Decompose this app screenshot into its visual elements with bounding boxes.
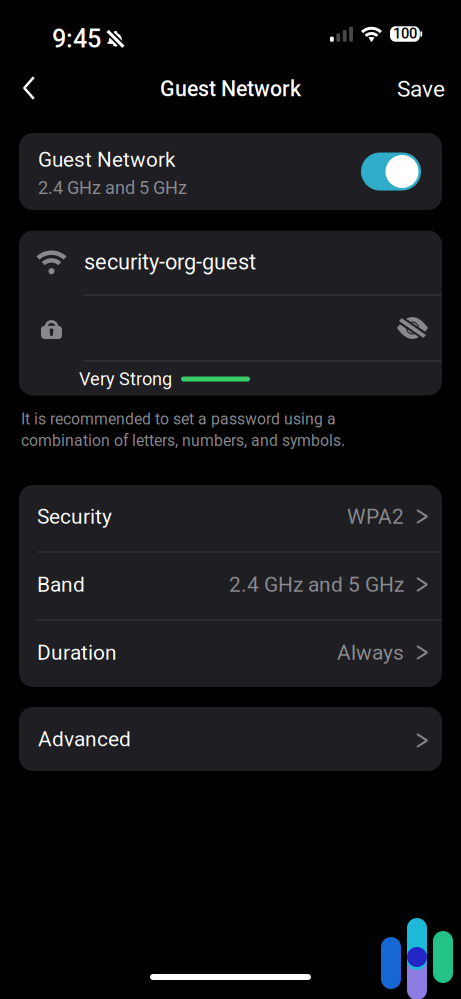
- button[interactable]: Guest Network: [19, 133, 442, 210]
- staticText: 100: [393, 25, 417, 42]
- staticText: combination of letters, numbers, and sym…: [21, 431, 345, 450]
- button[interactable]: Advanced: [19, 707, 442, 771]
- staticText: Guest Network: [160, 76, 301, 101]
- staticText: Band: [37, 572, 85, 597]
- staticText: It is recommended to set a password usin…: [21, 410, 336, 428]
- staticText: Advanced: [38, 727, 131, 751]
- button[interactable]: Band: [19, 552, 442, 619]
- staticText: WPA2: [347, 504, 404, 529]
- staticText: 2.4 GHz and 5 GHz: [38, 177, 187, 198]
- staticText: Very Strong: [79, 368, 172, 390]
- button[interactable]: Save: [381, 62, 461, 116]
- button[interactable]: Duration: [19, 620, 442, 687]
- staticText: Guest Network: [38, 147, 175, 172]
- button[interactable]: Security: [19, 484, 442, 551]
- staticText: 9:45: [52, 24, 101, 54]
- staticText: Save: [397, 76, 445, 102]
- staticText: Duration: [37, 640, 117, 665]
- staticText: 2.4 GHz and 5 GHz: [229, 572, 404, 597]
- button[interactable]: Back: [0, 62, 58, 114]
- staticText: Security: [37, 504, 112, 529]
- staticText: Always: [337, 640, 404, 665]
- staticText: security-org-guest: [84, 249, 256, 275]
